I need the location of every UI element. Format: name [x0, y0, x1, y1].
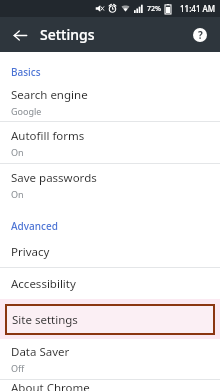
staticText: Settings — [40, 25, 95, 44]
button[interactable]: Search engine — [0, 82, 220, 121]
staticText: Save passwords — [11, 170, 97, 186]
staticText: Google — [11, 105, 42, 117]
staticText: About Chrome — [11, 380, 90, 391]
staticText: Search engine — [11, 87, 88, 103]
staticText: Privacy — [11, 244, 50, 260]
staticText: Accessibility — [11, 276, 76, 292]
staticText: Site settings — [12, 312, 78, 328]
button[interactable]: About Chrome — [0, 380, 220, 391]
staticText: 11:41 AM — [180, 3, 216, 14]
button[interactable]: Help — [188, 23, 212, 47]
button[interactable]: Save passwords — [0, 164, 220, 205]
staticText: 72% — [147, 4, 161, 14]
staticText: Data Saver — [11, 344, 70, 360]
staticText: Off — [11, 362, 25, 374]
button[interactable]: Autofill forms — [0, 122, 220, 163]
staticText: Autofill forms — [11, 128, 85, 144]
button[interactable]: Site settings — [5, 304, 215, 335]
button[interactable]: Data Saver — [0, 339, 220, 379]
staticText: Advanced — [11, 219, 58, 233]
staticText: Basics — [11, 65, 41, 79]
button[interactable]: Accessibility — [0, 268, 220, 299]
button[interactable]: Privacy — [0, 236, 220, 267]
staticText: ? — [198, 28, 203, 42]
button[interactable]: Back — [8, 23, 32, 47]
staticText: On — [11, 188, 24, 200]
staticText: On — [11, 146, 24, 158]
